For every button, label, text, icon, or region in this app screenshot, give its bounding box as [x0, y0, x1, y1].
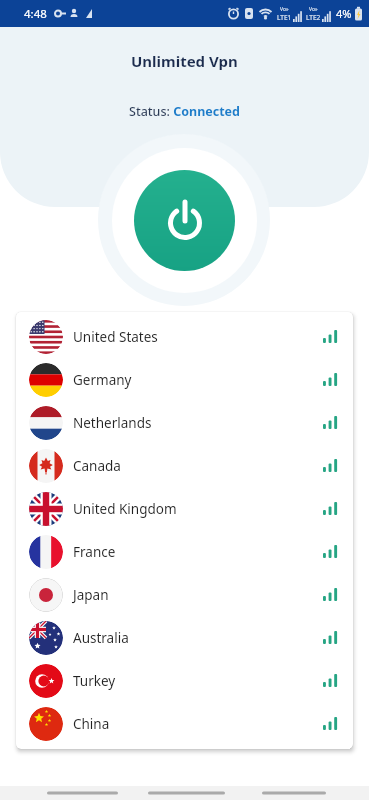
- staticText: United States: [73, 328, 158, 346]
- staticText: Canada: [73, 457, 121, 475]
- staticText: LTE2: [306, 13, 321, 22]
- staticText: Japan: [73, 586, 109, 604]
- staticText: Australia: [73, 629, 129, 647]
- button[interactable]: France: [16, 530, 353, 573]
- button[interactable]: Turkey: [16, 659, 353, 702]
- staticText: 4:48: [24, 6, 47, 22]
- button[interactable]: [134, 170, 235, 271]
- button[interactable]: Germany: [16, 358, 353, 401]
- staticText: Germany: [73, 371, 132, 389]
- staticText: China: [73, 715, 110, 733]
- staticText: 4%: [336, 6, 352, 21]
- button[interactable]: United Kingdom: [16, 487, 353, 530]
- staticText: Status: Connected: [129, 103, 240, 120]
- button[interactable]: United States: [16, 315, 353, 358]
- staticText: Unlimited Vpn: [131, 51, 238, 71]
- staticText: Vo»: [280, 6, 289, 13]
- button[interactable]: Japan: [16, 573, 353, 616]
- staticText: Turkey: [73, 672, 116, 690]
- button[interactable]: Australia: [16, 616, 353, 659]
- staticText: Vo»: [309, 6, 318, 13]
- staticText: Netherlands: [73, 414, 152, 432]
- button[interactable]: China: [16, 702, 353, 745]
- staticText: France: [73, 543, 116, 561]
- staticText: United Kingdom: [73, 500, 177, 518]
- staticText: LTE1: [277, 13, 292, 22]
- button[interactable]: Netherlands: [16, 401, 353, 444]
- button[interactable]: Canada: [16, 444, 353, 487]
